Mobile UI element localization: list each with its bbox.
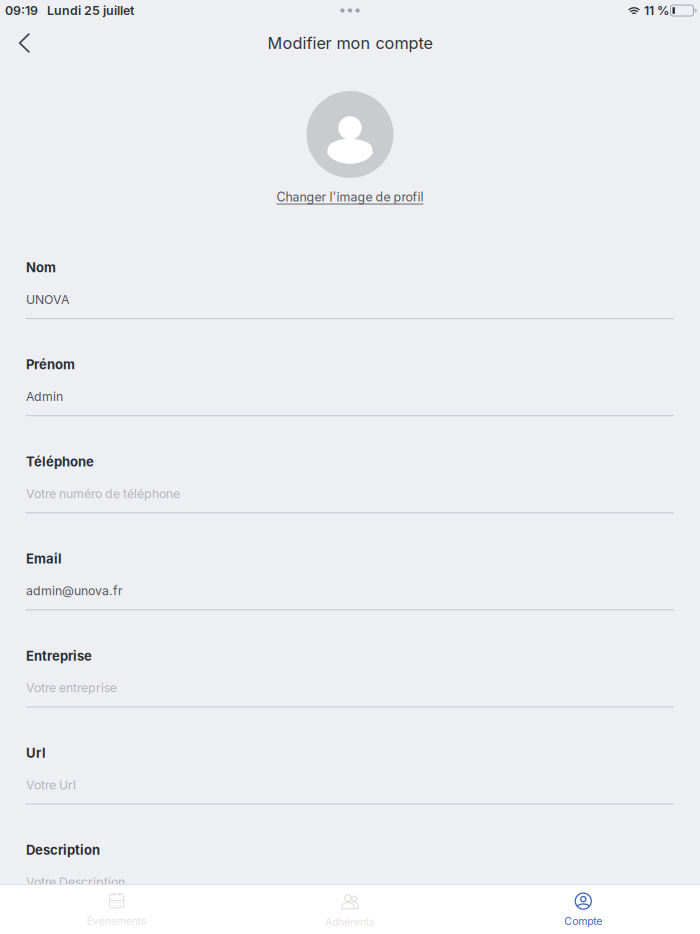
staticText: Modifier mon compte (267, 33, 432, 53)
button[interactable]: Url (26, 747, 674, 805)
button[interactable]: Email (26, 553, 674, 610)
staticText: Prénom (26, 357, 75, 372)
button[interactable]: Évènements (0, 884, 233, 934)
button[interactable]: Adhérents (233, 884, 467, 934)
staticText: Nom (26, 260, 56, 275)
staticText: admin@unova.fr (26, 583, 123, 598)
staticText: Description (26, 842, 100, 858)
staticText: Changer l'image de profil (276, 189, 423, 204)
staticText: 11 % (644, 3, 669, 18)
staticText: Compte (564, 915, 602, 927)
button[interactable]: Back (0, 21, 49, 65)
button[interactable]: Compte (467, 884, 700, 934)
staticText: Votre numéro de téléphone (26, 486, 180, 501)
button[interactable]: Description (26, 845, 674, 902)
staticText: Votre entreprise (26, 680, 117, 695)
staticText: Entreprise (26, 648, 92, 664)
button[interactable]: Nom (26, 262, 674, 319)
staticText: UNOVA (26, 292, 69, 307)
button[interactable]: Entreprise (26, 650, 674, 707)
staticText: Votre Description (26, 875, 125, 889)
staticText: 09:19 (5, 3, 38, 18)
staticText: Email (26, 551, 62, 567)
staticText: Évènements (87, 914, 147, 927)
staticText: Téléphone (26, 454, 94, 470)
button[interactable]: Changer l'image de profil (250, 91, 450, 203)
staticText: Lundi 25 juillet (47, 3, 134, 18)
button[interactable]: Téléphone (26, 456, 674, 513)
staticText: Adhérents (325, 915, 375, 928)
staticText: Admin (26, 389, 63, 404)
button[interactable]: Prénom (26, 359, 674, 416)
staticText: Votre Url (26, 778, 76, 792)
staticText: Url (26, 745, 46, 761)
